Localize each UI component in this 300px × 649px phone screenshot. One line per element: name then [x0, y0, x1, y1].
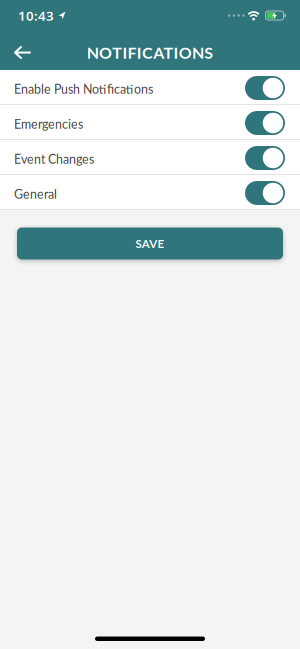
staticText: Event Changes	[14, 152, 94, 166]
staticText: Emergencies	[14, 117, 83, 131]
button[interactable]: General	[245, 181, 285, 205]
staticText: SAVE	[135, 237, 165, 250]
button[interactable]: SAVE	[17, 227, 283, 259]
staticText: General	[14, 187, 57, 201]
staticText: Enable Push Notifications	[14, 82, 153, 96]
button[interactable]: Enable Push Notifications	[245, 76, 285, 100]
button[interactable]: Emergencies	[245, 111, 285, 135]
staticText: 10:43	[18, 7, 54, 24]
button[interactable]: Event Changes	[245, 146, 285, 170]
button[interactable]: Back	[0, 36, 30, 68]
staticText: NOTIFICATIONS	[87, 43, 213, 62]
